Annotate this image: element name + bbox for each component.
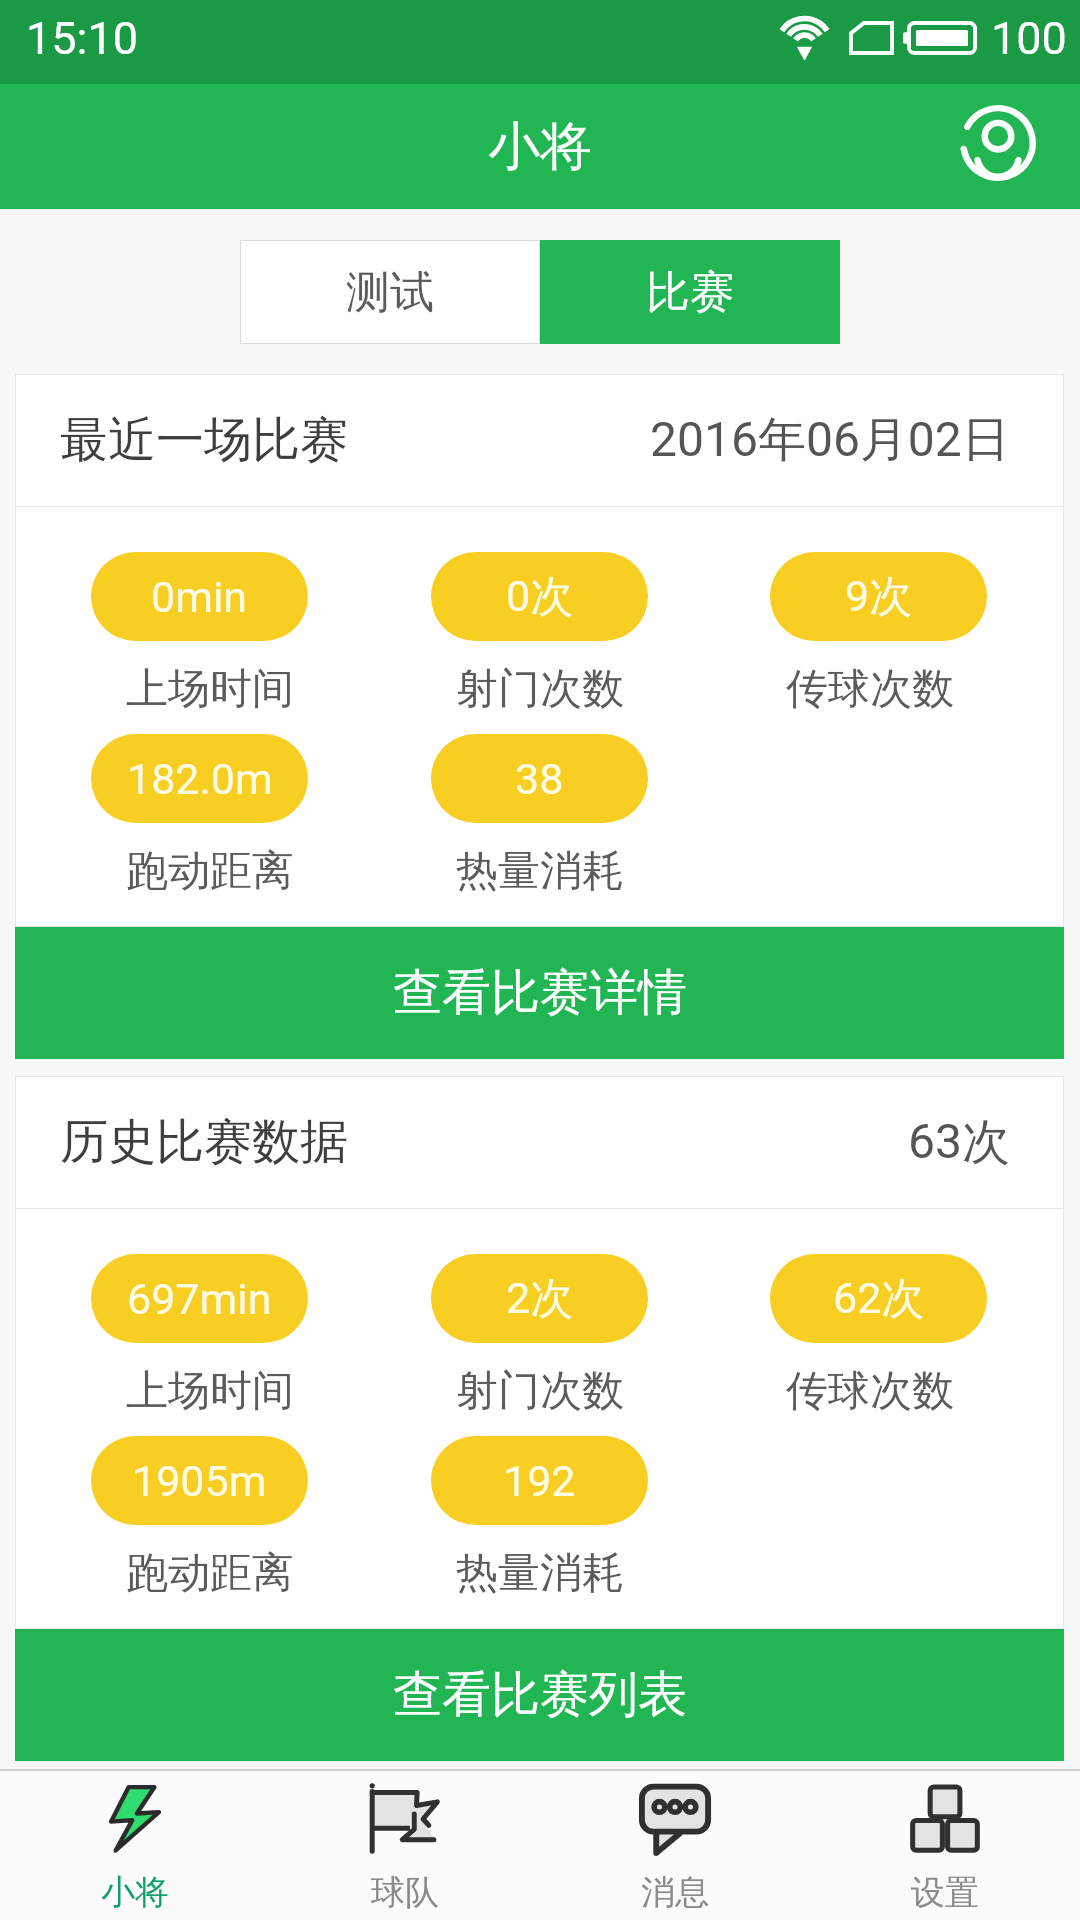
staticText: 消息	[641, 1871, 709, 1914]
staticText: 62次	[833, 1272, 925, 1326]
staticText: 历史比赛数据	[60, 1112, 348, 1172]
staticText: 15:10	[26, 12, 139, 65]
staticText: 9次	[845, 570, 913, 624]
staticText: 0min	[151, 572, 248, 622]
staticText: 最近一场比赛	[60, 410, 348, 470]
staticText: 测试	[346, 265, 434, 320]
staticText: 100	[991, 12, 1067, 65]
staticText: 63次	[908, 1112, 1010, 1172]
button[interactable]: 比赛	[540, 240, 840, 344]
staticText: 球队	[371, 1871, 439, 1914]
staticText: 上场时间	[126, 1365, 294, 1418]
staticText: 热量消耗	[456, 1547, 624, 1600]
button[interactable]: 小将	[0, 1771, 270, 1920]
button[interactable]: Profile	[952, 97, 1044, 189]
staticText: 跑动距离	[126, 1547, 294, 1600]
staticText: 上场时间	[126, 663, 294, 716]
staticText: 182.0m	[127, 754, 273, 804]
staticText: 查看比赛列表	[393, 1664, 687, 1726]
staticText: 1905m	[132, 1456, 267, 1506]
staticText: 697min	[127, 1274, 272, 1324]
button[interactable]: 查看比赛列表	[15, 1629, 1064, 1761]
button[interactable]: 设置	[810, 1771, 1080, 1920]
staticText: 查看比赛详情	[393, 962, 687, 1024]
button[interactable]: 测试	[240, 240, 540, 344]
staticText: 192	[503, 1456, 576, 1506]
staticText: 传球次数	[786, 663, 954, 716]
staticText: 设置	[911, 1871, 979, 1914]
staticText: 2016年06月02日	[650, 410, 1010, 470]
staticText: 小将	[101, 1871, 169, 1914]
staticText: 传球次数	[786, 1365, 954, 1418]
staticText: 2次	[506, 1272, 574, 1326]
staticText: 比赛	[646, 265, 734, 320]
button[interactable]: 消息	[540, 1771, 810, 1920]
staticText: 跑动距离	[126, 845, 294, 898]
staticText: 热量消耗	[456, 845, 624, 898]
staticText: 射门次数	[456, 663, 624, 716]
button[interactable]: 查看比赛详情	[15, 927, 1064, 1059]
staticText: 0次	[506, 570, 574, 624]
staticText: 小将	[488, 114, 592, 180]
button[interactable]: 球队	[270, 1771, 540, 1920]
staticText: 射门次数	[456, 1365, 624, 1418]
staticText: 38	[515, 754, 564, 804]
